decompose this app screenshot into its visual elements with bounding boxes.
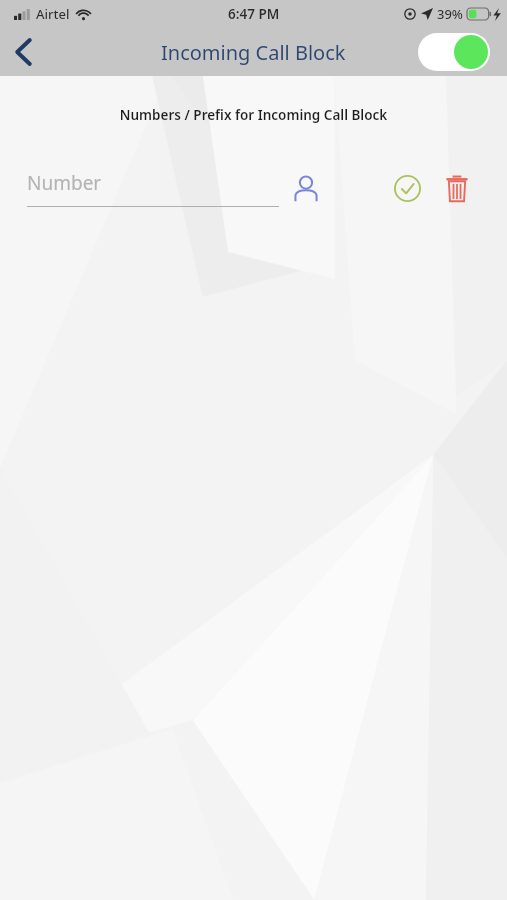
button[interactable]: Pick contact bbox=[286, 168, 326, 208]
button[interactable]: Delete bbox=[436, 167, 478, 209]
staticText: 6:47 PM bbox=[228, 5, 280, 23]
staticText: Incoming Call Block bbox=[161, 39, 346, 66]
button[interactable]: Back bbox=[0, 29, 46, 75]
button[interactable]: Enable incoming call block bbox=[418, 33, 490, 71]
staticText: Airtel bbox=[36, 5, 70, 23]
button[interactable]: Number bbox=[27, 170, 279, 207]
staticText: 39% bbox=[437, 5, 463, 23]
staticText: Numbers / Prefix for Incoming Call Block bbox=[0, 106, 507, 124]
staticText: Number bbox=[27, 170, 102, 196]
button[interactable]: Confirm bbox=[386, 167, 428, 209]
